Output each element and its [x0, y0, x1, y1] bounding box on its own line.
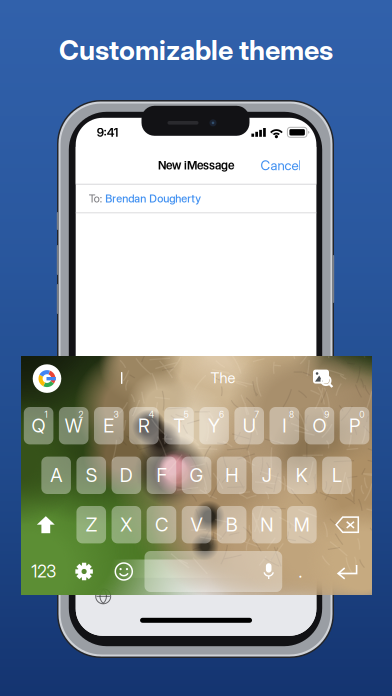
staticText: 1	[44, 409, 47, 420]
staticText: Y	[208, 414, 220, 437]
staticText: U	[243, 414, 256, 437]
staticText: I	[282, 414, 286, 437]
staticText: G	[190, 464, 204, 487]
button[interactable]: I	[269, 407, 299, 444]
button[interactable]: F	[147, 457, 176, 494]
button[interactable]: Return	[325, 551, 369, 592]
staticText: H	[225, 464, 238, 487]
button[interactable]: Shift	[24, 506, 68, 543]
button[interactable]: G	[182, 457, 211, 494]
staticText: O	[312, 414, 326, 437]
button[interactable]: Switch keyboard	[89, 582, 118, 611]
button[interactable]: Backspace	[325, 506, 369, 543]
button[interactable]: Google search	[26, 358, 68, 400]
staticText: 0	[359, 409, 364, 420]
staticText: M	[294, 513, 310, 536]
button[interactable]: Period	[286, 551, 314, 592]
staticText: F	[156, 464, 166, 487]
staticText: S	[86, 464, 97, 487]
button[interactable]: P	[340, 407, 369, 444]
staticText: X	[120, 513, 132, 536]
button[interactable]: L	[322, 457, 352, 494]
button[interactable]: N	[252, 506, 281, 543]
button[interactable]: J	[252, 457, 282, 494]
staticText: T	[173, 414, 184, 437]
staticText: N	[260, 513, 273, 536]
button[interactable]: Q	[24, 407, 53, 444]
staticText: 3	[114, 409, 119, 420]
button[interactable]: V	[182, 506, 211, 543]
staticText: The	[210, 369, 235, 387]
button[interactable]: B	[217, 506, 246, 543]
staticText: K	[296, 464, 308, 487]
button[interactable]: Settings	[66, 551, 102, 592]
staticText: R	[138, 414, 150, 437]
staticText: To:	[89, 192, 102, 205]
staticText: New iMessage	[158, 158, 234, 172]
button[interactable]: H	[217, 457, 246, 494]
staticText: P	[349, 414, 360, 437]
button[interactable]: A	[41, 457, 71, 494]
staticText: C	[155, 513, 168, 536]
button[interactable]: Numbers	[22, 551, 66, 592]
button[interactable]: O	[305, 407, 334, 444]
staticText: Q	[32, 414, 46, 437]
staticText: Customizable themes	[59, 33, 333, 67]
button[interactable]: S	[76, 457, 106, 494]
button[interactable]: U	[234, 407, 264, 444]
button[interactable]: To:	[76, 184, 316, 212]
staticText: 2	[78, 409, 83, 420]
button[interactable]: X	[112, 506, 141, 543]
button[interactable]: R	[129, 407, 159, 444]
staticText: W	[65, 414, 83, 437]
staticText: 8	[289, 409, 294, 420]
staticText: Z	[86, 513, 97, 536]
staticText: V	[191, 513, 203, 536]
staticText: D	[120, 464, 133, 487]
staticText: 4	[149, 409, 154, 420]
button[interactable]: T	[164, 407, 194, 444]
button[interactable]: Emoji	[106, 551, 142, 592]
staticText: 6	[219, 409, 224, 420]
button[interactable]: Y	[199, 407, 229, 444]
button[interactable]: Space	[144, 551, 282, 592]
button[interactable]: Z	[76, 506, 106, 543]
staticText: 123	[31, 561, 56, 582]
staticText: 5	[184, 409, 189, 420]
button[interactable]: K	[287, 457, 317, 494]
staticText: L	[332, 464, 342, 487]
button[interactable]: Cancel	[254, 147, 307, 183]
button[interactable]: C	[147, 506, 176, 543]
staticText: 9	[324, 409, 329, 420]
staticText: .	[298, 561, 302, 582]
staticText: 7	[254, 409, 258, 420]
button[interactable]: W	[59, 407, 88, 444]
staticText: Cancel	[260, 157, 301, 173]
staticText: B	[226, 513, 238, 536]
staticText: E	[103, 414, 114, 437]
staticText: Brendan Dougherty	[105, 192, 201, 205]
button[interactable]: Image search	[303, 359, 343, 399]
button[interactable]: E	[94, 407, 124, 444]
button[interactable]: D	[112, 457, 141, 494]
staticText: 9:41	[97, 125, 119, 139]
staticText: J	[262, 464, 272, 487]
button[interactable]: M	[287, 506, 317, 543]
staticText: A	[50, 464, 62, 487]
